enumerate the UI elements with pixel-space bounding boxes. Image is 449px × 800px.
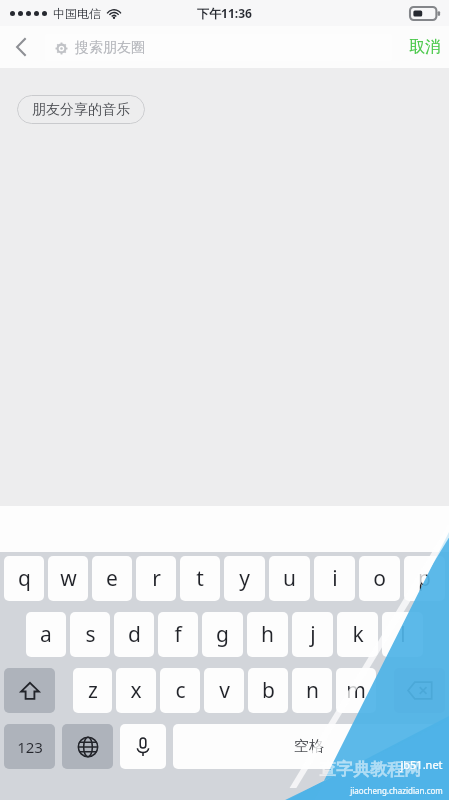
staticText: 下午11:36 bbox=[197, 5, 252, 21]
button[interactable]: Shift bbox=[4, 668, 55, 713]
staticText: c bbox=[175, 676, 186, 705]
staticText: p bbox=[418, 564, 431, 593]
staticText: l bbox=[400, 620, 406, 649]
button[interactable]: g bbox=[202, 612, 243, 657]
staticText: 123 bbox=[17, 737, 43, 757]
button[interactable]: w bbox=[48, 556, 88, 601]
button[interactable]: Voice input bbox=[120, 724, 166, 769]
staticText: h bbox=[261, 620, 274, 649]
staticText: jb51.net bbox=[400, 757, 443, 772]
button[interactable]: y bbox=[224, 556, 265, 601]
staticText: z bbox=[88, 676, 98, 705]
button[interactable]: d bbox=[114, 612, 154, 657]
staticText: m bbox=[346, 676, 366, 705]
staticText: n bbox=[306, 676, 319, 705]
button[interactable]: f bbox=[158, 612, 198, 657]
button[interactable]: k bbox=[337, 612, 378, 657]
staticText: 查字典教程网 bbox=[319, 759, 421, 780]
button[interactable]: Back bbox=[0, 26, 42, 68]
staticText: d bbox=[128, 620, 141, 649]
staticText: v bbox=[219, 676, 230, 705]
staticText: o bbox=[373, 564, 386, 593]
button[interactable]: o bbox=[359, 556, 400, 601]
staticText: r bbox=[152, 564, 161, 593]
button[interactable]: z bbox=[73, 668, 112, 713]
button[interactable]: p bbox=[404, 556, 445, 601]
staticText: 空格 bbox=[294, 737, 324, 756]
button[interactable]: l bbox=[382, 612, 423, 657]
staticText: 取消 bbox=[409, 37, 441, 57]
staticText: f bbox=[174, 620, 182, 649]
staticText: t bbox=[196, 564, 204, 593]
staticText: jiaocheng.chazidian.com bbox=[350, 785, 443, 796]
button[interactable]: s bbox=[70, 612, 110, 657]
button[interactable]: 123 bbox=[4, 724, 55, 769]
staticText: x bbox=[130, 676, 142, 705]
staticText: b bbox=[262, 676, 275, 705]
button[interactable]: 朋友分享的音乐 bbox=[17, 95, 145, 124]
staticText: y bbox=[239, 564, 250, 593]
button[interactable]: a bbox=[26, 612, 66, 657]
button[interactable]: Switch language bbox=[62, 724, 113, 769]
button[interactable]: i bbox=[314, 556, 355, 601]
staticText: j bbox=[310, 620, 316, 649]
staticText: g bbox=[216, 620, 229, 649]
staticText: e bbox=[106, 564, 118, 593]
button[interactable]: c bbox=[160, 668, 200, 713]
staticText: 中国电信 bbox=[53, 6, 101, 21]
staticText: 搜索朋友圈 bbox=[75, 39, 145, 57]
button[interactable]: m bbox=[336, 668, 376, 713]
button[interactable]: 搜索朋友圈 bbox=[45, 34, 392, 61]
button[interactable]: n bbox=[292, 668, 332, 713]
staticText: 朋友分享的音乐 bbox=[32, 101, 130, 119]
staticText: u bbox=[283, 564, 296, 593]
button[interactable]: v bbox=[204, 668, 244, 713]
button[interactable]: t bbox=[180, 556, 220, 601]
staticText: k bbox=[352, 620, 364, 649]
button[interactable]: b bbox=[248, 668, 288, 713]
staticText: s bbox=[85, 620, 96, 649]
staticText: a bbox=[40, 620, 52, 649]
staticText: w bbox=[60, 564, 77, 593]
button[interactable]: e bbox=[92, 556, 132, 601]
button[interactable]: 空格 bbox=[173, 724, 445, 769]
button[interactable]: q bbox=[4, 556, 44, 601]
button[interactable]: u bbox=[269, 556, 310, 601]
button[interactable]: 取消 bbox=[401, 26, 449, 68]
staticText: q bbox=[18, 564, 31, 593]
button[interactable]: x bbox=[116, 668, 156, 713]
button[interactable]: h bbox=[247, 612, 288, 657]
button[interactable]: r bbox=[136, 556, 176, 601]
button[interactable]: j bbox=[292, 612, 333, 657]
staticText: i bbox=[332, 564, 338, 593]
